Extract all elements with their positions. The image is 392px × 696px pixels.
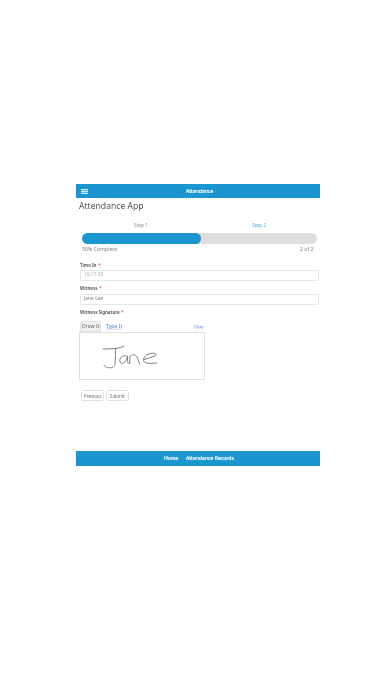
staticText: Jane Lee [84,295,104,302]
button[interactable]: Type It [103,321,125,332]
button[interactable]: Submit [106,390,129,401]
staticText: 2 of 2 [300,245,314,252]
button[interactable]: Open navigation menu [78,184,90,198]
staticText: Witness [80,285,98,291]
staticText: Type It [106,323,123,330]
button[interactable]: Previous [81,390,104,401]
button[interactable]: 10:17:35 [80,270,319,281]
staticText: Attendance Records [186,455,234,462]
staticText: 10:17:35 [84,271,104,278]
staticText: Previous [84,393,102,399]
staticText: Step 2 [252,222,267,229]
staticText: Attendance App [79,200,144,212]
staticText: * [120,309,124,315]
staticText: Attendance [186,188,214,195]
staticText: * [97,262,101,268]
button[interactable]: Draw It [80,321,101,332]
staticText: 50% Complete [82,245,118,252]
button[interactable]: Home [162,451,180,466]
staticText: * [98,285,102,291]
staticText: Clear [194,324,204,329]
staticText: Step 1 [134,222,149,229]
staticText: Submit [110,393,125,399]
button[interactable]: Attendance Records [185,451,235,466]
button[interactable]: Jane Lee [80,294,319,305]
button[interactable]: Clear [192,321,206,332]
staticText: Witness Signature [80,309,120,315]
staticText: Draw It [82,323,100,330]
staticText: Home [164,455,179,462]
staticText: Time In [80,262,97,268]
